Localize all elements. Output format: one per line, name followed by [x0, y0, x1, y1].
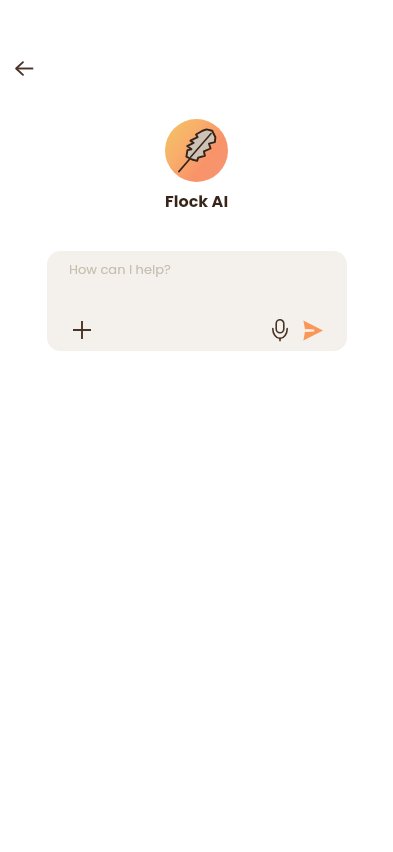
staticText: Flock AI — [165, 190, 229, 212]
button[interactable]: Voice input — [262, 312, 298, 348]
button[interactable]: Back — [6, 50, 42, 86]
button[interactable]: Send — [295, 312, 331, 348]
button[interactable]: Add attachment — [64, 312, 100, 348]
staticText: How can I help? — [69, 260, 171, 278]
button[interactable]: How can I help? — [47, 251, 347, 351]
